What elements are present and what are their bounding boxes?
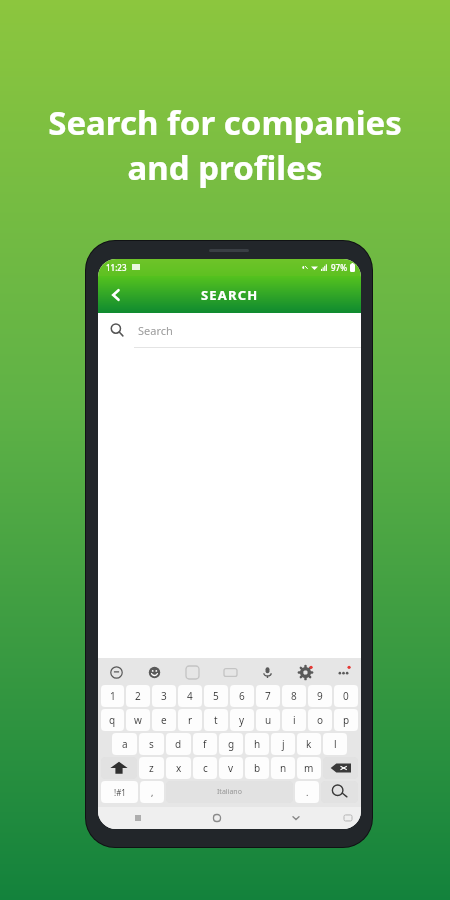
- button[interactable]: s: [139, 733, 164, 755]
- staticText: d: [175, 737, 182, 751]
- staticText: !#1: [114, 787, 126, 798]
- button[interactable]: o: [308, 709, 332, 731]
- staticText: f: [203, 737, 207, 751]
- button[interactable]: p: [334, 709, 358, 731]
- button[interactable]: 2: [126, 685, 150, 707]
- staticText: .: [306, 786, 309, 798]
- button[interactable]: Shift: [101, 757, 137, 779]
- staticText: j: [282, 737, 285, 751]
- staticText: x: [176, 761, 182, 775]
- button[interactable]: u: [256, 709, 280, 731]
- staticText: 0: [343, 689, 349, 703]
- button[interactable]: h: [245, 733, 269, 755]
- staticText: g: [228, 737, 235, 751]
- button[interactable]: Backspace: [323, 757, 358, 779]
- staticText: Search for companies and profiles: [48, 100, 402, 189]
- button[interactable]: v: [219, 757, 243, 779]
- button[interactable]: Back: [98, 276, 134, 313]
- button[interactable]: Recents: [98, 807, 177, 829]
- staticText: p: [343, 713, 350, 727]
- staticText: s: [149, 737, 154, 751]
- staticText: l: [334, 737, 337, 751]
- button[interactable]: Italiano: [166, 781, 293, 803]
- button[interactable]: GIF: [220, 662, 240, 682]
- button[interactable]: 6: [230, 685, 254, 707]
- button[interactable]: q: [101, 709, 124, 731]
- staticText: 11:23: [106, 262, 127, 273]
- button[interactable]: More options: [333, 662, 353, 682]
- button[interactable]: g: [219, 733, 243, 755]
- button[interactable]: b: [245, 757, 269, 779]
- button[interactable]: k: [297, 733, 321, 755]
- button[interactable]: n: [271, 757, 295, 779]
- staticText: 6: [239, 689, 245, 703]
- staticText: 1: [110, 689, 116, 703]
- staticText: ,: [151, 786, 154, 798]
- button[interactable]: Voice input: [257, 662, 277, 682]
- staticText: 7: [265, 689, 271, 703]
- button[interactable]: Search: [98, 313, 361, 347]
- button[interactable]: i: [282, 709, 306, 731]
- button[interactable]: Switch keyboard: [335, 807, 361, 829]
- staticText: v: [228, 761, 234, 775]
- staticText: h: [254, 737, 261, 751]
- button[interactable]: a: [112, 733, 137, 755]
- staticText: y: [239, 713, 245, 727]
- button[interactable]: 9: [308, 685, 332, 707]
- button[interactable]: .: [295, 781, 319, 803]
- button[interactable]: 1: [101, 685, 124, 707]
- staticText: e: [161, 713, 167, 727]
- staticText: 9: [317, 689, 323, 703]
- button[interactable]: 0: [334, 685, 358, 707]
- button[interactable]: 7: [256, 685, 280, 707]
- staticText: i: [293, 713, 296, 727]
- staticText: c: [203, 761, 208, 775]
- staticText: Italiano: [217, 787, 242, 797]
- staticText: q: [109, 713, 116, 727]
- button[interactable]: 3: [152, 685, 176, 707]
- staticText: 8: [291, 689, 297, 703]
- button[interactable]: Translate: [106, 662, 126, 682]
- button[interactable]: r: [178, 709, 202, 731]
- button[interactable]: z: [139, 757, 164, 779]
- staticText: n: [280, 761, 287, 775]
- staticText: SEARCH: [201, 286, 259, 304]
- button[interactable]: Settings: [295, 662, 315, 682]
- button[interactable]: Search: [321, 781, 358, 803]
- staticText: r: [188, 713, 193, 727]
- button[interactable]: j: [271, 733, 295, 755]
- button[interactable]: 5: [204, 685, 228, 707]
- button[interactable]: Stickers: [182, 662, 202, 682]
- button[interactable]: t: [204, 709, 228, 731]
- staticText: z: [149, 761, 154, 775]
- button[interactable]: Hide keyboard: [256, 807, 335, 829]
- button[interactable]: l: [323, 733, 347, 755]
- staticText: w: [134, 713, 142, 727]
- staticText: 3: [161, 689, 167, 703]
- staticText: 2: [135, 689, 141, 703]
- staticText: 4: [187, 689, 193, 703]
- staticText: u: [265, 713, 272, 727]
- button[interactable]: Home: [177, 807, 256, 829]
- button[interactable]: y: [230, 709, 254, 731]
- button[interactable]: m: [297, 757, 321, 779]
- staticText: a: [122, 737, 128, 751]
- staticText: o: [317, 713, 324, 727]
- button[interactable]: ,: [140, 781, 164, 803]
- button[interactable]: d: [166, 733, 191, 755]
- button[interactable]: f: [193, 733, 217, 755]
- staticText: b: [254, 761, 261, 775]
- staticText: 5: [213, 689, 219, 703]
- button[interactable]: x: [166, 757, 191, 779]
- button[interactable]: e: [152, 709, 176, 731]
- staticText: m: [304, 761, 314, 775]
- button[interactable]: c: [193, 757, 217, 779]
- button[interactable]: 8: [282, 685, 306, 707]
- staticText: k: [306, 737, 312, 751]
- button[interactable]: !#1: [101, 781, 138, 803]
- button[interactable]: Emoji: [144, 662, 164, 682]
- staticText: Search: [138, 323, 173, 338]
- button[interactable]: 4: [178, 685, 202, 707]
- button[interactable]: w: [126, 709, 150, 731]
- staticText: 97%: [331, 262, 347, 273]
